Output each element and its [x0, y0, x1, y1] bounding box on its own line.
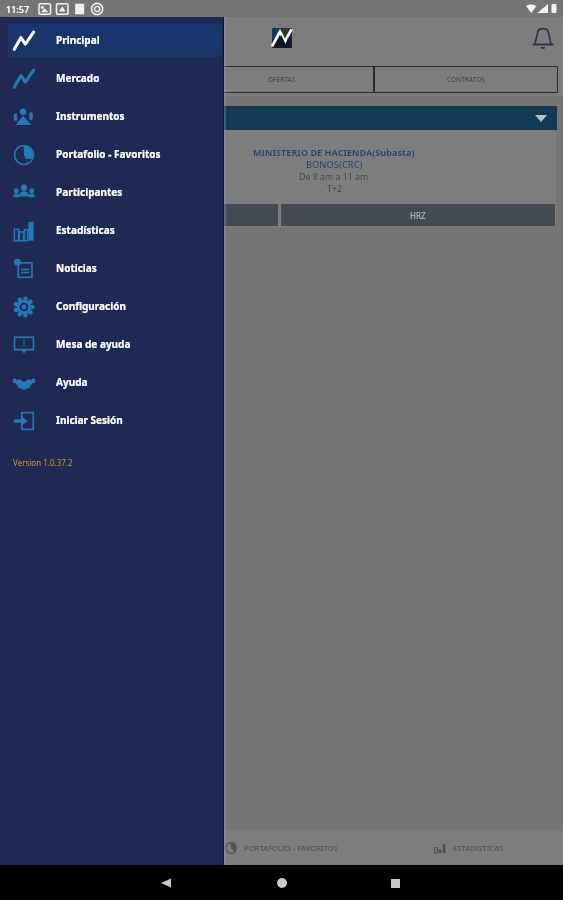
button[interactable]: Principal [8, 23, 222, 57]
button[interactable]: Instrumentos [8, 99, 222, 133]
staticText: Mesa de ayuda [56, 337, 131, 351]
button[interactable]: Estadísticas [8, 213, 222, 247]
button[interactable]: Configuración [8, 289, 222, 323]
staticText: Estadísticas [56, 223, 115, 237]
staticText: Noticias [56, 261, 97, 275]
staticText: Configuración [56, 299, 126, 313]
staticText: Ayuda [56, 375, 88, 389]
staticText: Principal [56, 33, 100, 47]
button[interactable]: CONTRATOS [374, 66, 558, 93]
button[interactable]: HRZ [281, 204, 555, 226]
staticText: De 8 am a 11 am [299, 171, 369, 183]
button[interactable]: MINISTERIO DE HACIENDA(Subasta) [4, 130, 556, 227]
button[interactable]: Participantes [8, 175, 222, 209]
staticText: Instrumentos [56, 109, 125, 123]
button[interactable]: Back [150, 867, 182, 899]
button[interactable]: Ayuda [8, 365, 222, 399]
staticText: 11:57 [6, 3, 30, 15]
button[interactable]: App logo [272, 28, 292, 48]
button[interactable]: Select market [4, 106, 557, 130]
button[interactable]: OFERTAS [190, 66, 374, 93]
button[interactable]: Notifications [529, 23, 557, 51]
staticText: ESTADISTICAS [453, 843, 504, 853]
staticText: Version 1.0.37.2 [13, 457, 73, 468]
button[interactable]: Portafolio - Favoritos [8, 137, 222, 171]
staticText: BONOS(CRC) [306, 158, 363, 171]
staticText: Iniciar Sesión [56, 413, 123, 427]
button[interactable]: PORTAFOLIO - FAVORITOS [187, 830, 375, 865]
staticText: OFERTAS [268, 75, 296, 84]
staticText: CONTRATOS [447, 75, 485, 84]
staticText: Mercado [56, 71, 100, 85]
button[interactable]: ESTADISTICAS [375, 830, 563, 865]
button[interactable]: Mercado [8, 61, 222, 95]
button[interactable]: Home [266, 867, 298, 899]
staticText: Portafolio - Favoritos [56, 147, 161, 161]
staticText: MINISTERIO DE HACIENDA(Subasta) [253, 146, 415, 158]
button[interactable] [5, 66, 190, 93]
button[interactable] [5, 204, 278, 226]
staticText: PORTAFOLIO - FAVORITOS [244, 843, 338, 853]
staticText: T+2 [327, 183, 342, 195]
button[interactable]: Recents [379, 867, 411, 899]
button[interactable]: Mesa de ayuda [8, 327, 222, 361]
button[interactable]: Iniciar Sesión [8, 403, 222, 437]
staticText: HRZ [410, 210, 426, 221]
staticText: Participantes [56, 185, 123, 199]
button[interactable]: Noticias [8, 251, 222, 285]
